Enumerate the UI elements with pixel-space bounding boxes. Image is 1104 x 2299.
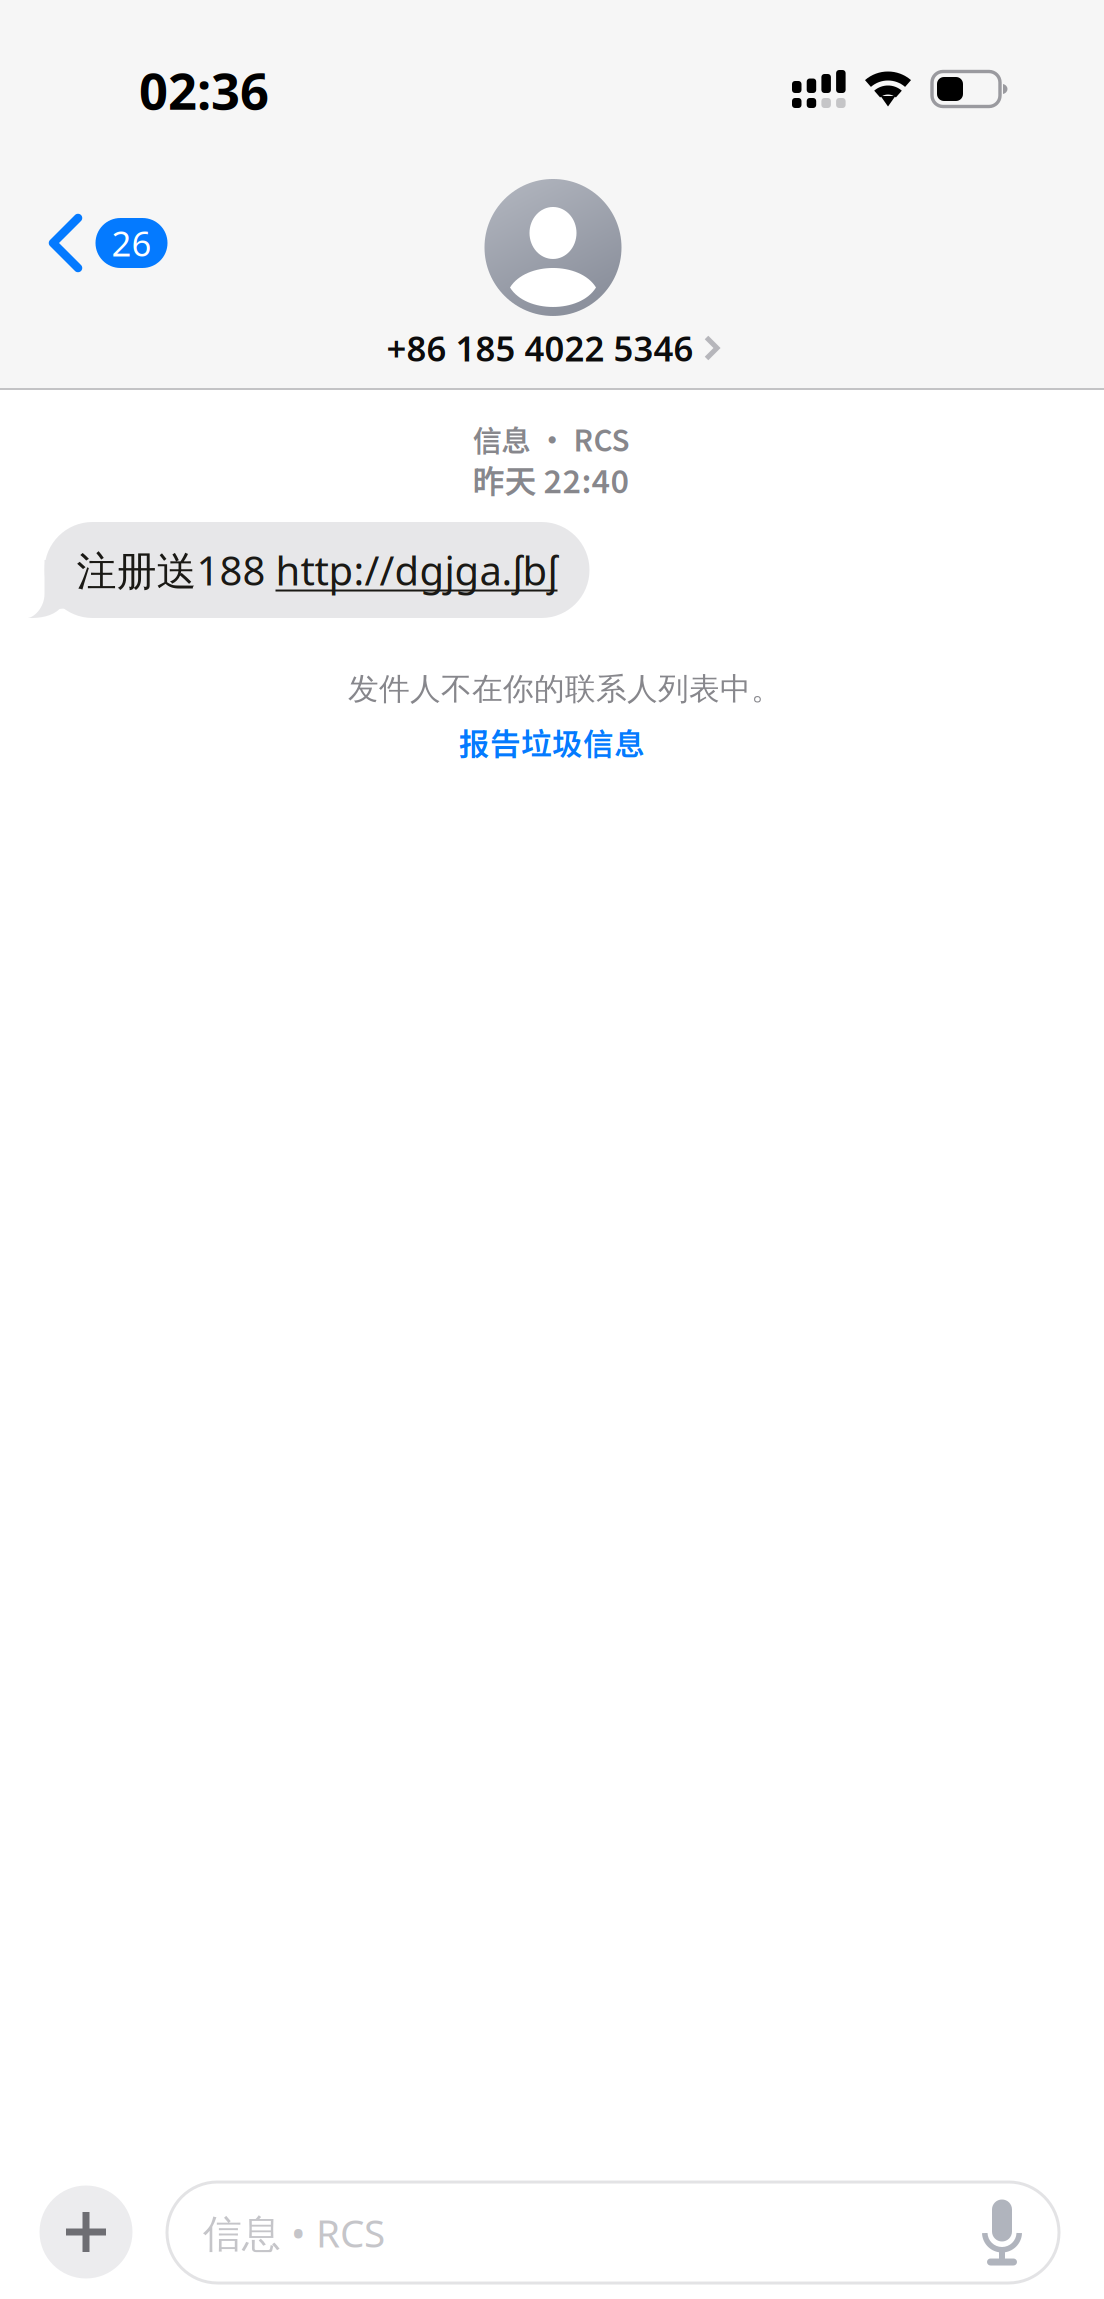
staticText: 26: [111, 220, 151, 266]
staticText: 信息 • RCS: [472, 418, 629, 460]
staticText: 02:36: [139, 56, 269, 124]
staticText: 信息 • RCS: [203, 2207, 385, 2258]
staticText: 发件人不在你的联系人列表中。: [348, 670, 782, 708]
button[interactable]: Back, 26 conversations: [32, 199, 183, 286]
staticText: 报告垃圾信息: [459, 720, 645, 764]
staticText: 昨天 22:40: [472, 456, 629, 502]
button[interactable]: Message field, 信息 • RCS: [167, 2182, 1059, 2283]
button[interactable]: +86 185 4022 5346, details: [386, 179, 719, 371]
staticText: +86 185 4022 5346: [386, 325, 693, 371]
button[interactable]: 报告垃圾信息: [445, 712, 659, 772]
staticText: 注册送188 http://dgjga.ʃbʃ: [76, 543, 557, 596]
button[interactable]: Attach: [39, 2185, 132, 2278]
